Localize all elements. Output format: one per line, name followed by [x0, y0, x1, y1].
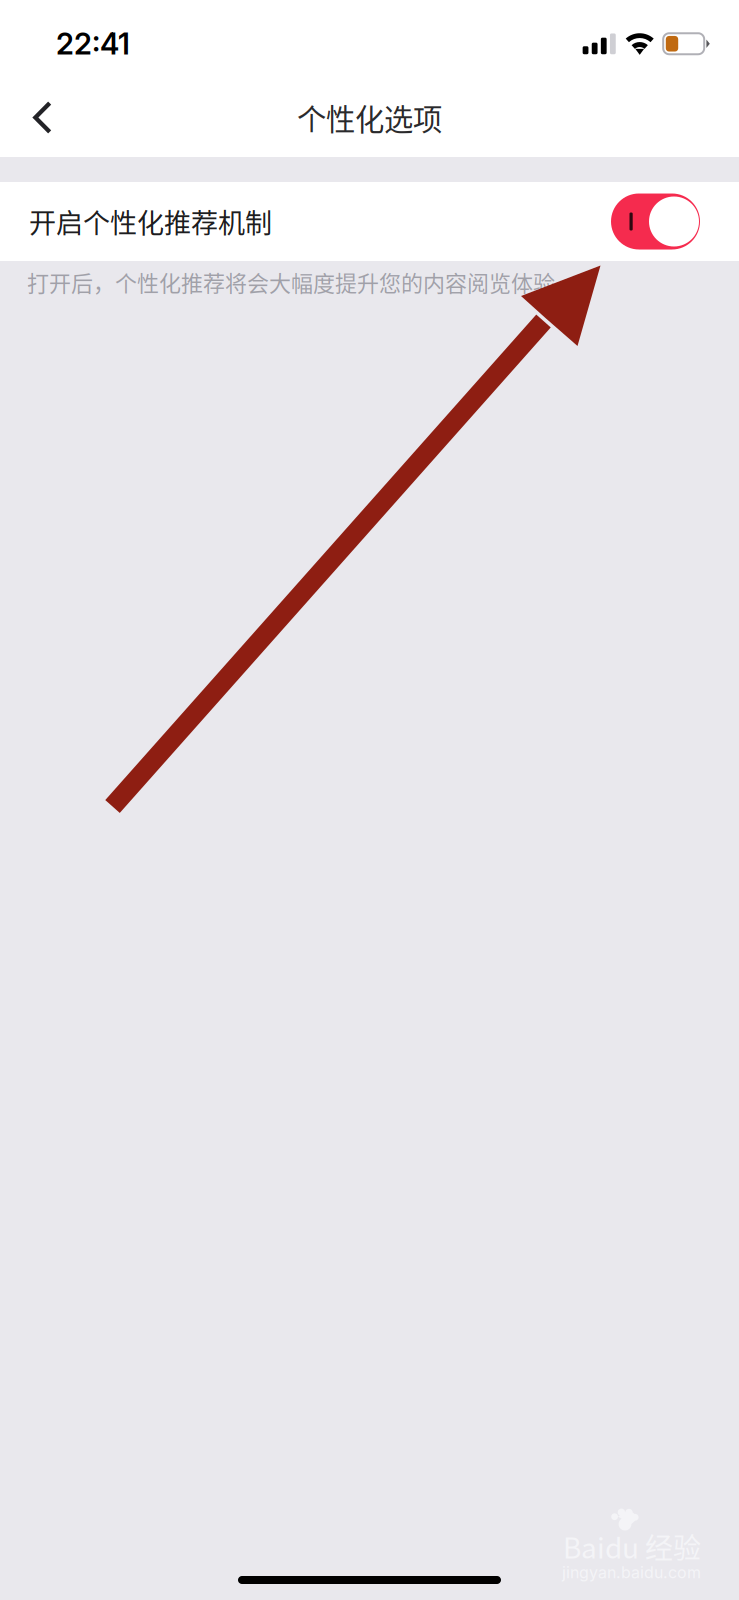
staticText: jingyan.baidu.com — [562, 1563, 701, 1582]
button[interactable]: Back — [11, 86, 73, 148]
staticText: 打开后，个性化推荐将会大幅度提升您的内容阅览体验 — [27, 266, 555, 298]
staticText: 22:41 — [56, 26, 130, 61]
staticText: 个性化选项 — [297, 96, 442, 139]
staticText: Baidu 经验 — [563, 1526, 701, 1567]
button[interactable]: 开启个性化推荐机制 — [0, 182, 739, 261]
staticText: 开启个性化推荐机制 — [29, 202, 272, 241]
